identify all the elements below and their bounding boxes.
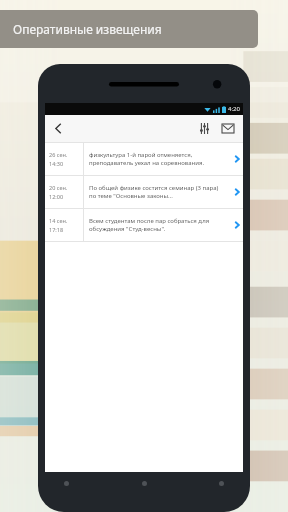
- button[interactable]: Filter: [191, 115, 217, 142]
- button[interactable]: Nav button: [142, 481, 147, 486]
- button[interactable]: 20 сен.: [45, 176, 243, 208]
- button[interactable]: Nav button: [219, 481, 224, 486]
- staticText: 4:20: [228, 105, 240, 113]
- other: Open: [230, 143, 243, 175]
- button[interactable]: Messages: [217, 115, 239, 142]
- button[interactable]: 26 сен.: [45, 143, 243, 175]
- staticText: 14:30: [49, 160, 64, 167]
- staticText: Всем студентам после пар собраться для о…: [89, 217, 227, 233]
- staticText: 17:18: [49, 226, 64, 233]
- staticText: 20 сен.: [49, 184, 68, 191]
- button[interactable]: Back: [45, 115, 71, 142]
- staticText: Оперативные извещения: [13, 21, 162, 37]
- staticText: 26 сен.: [49, 151, 68, 158]
- other: Open: [230, 176, 243, 208]
- staticText: физкультура 1-й парой отменяется, препод…: [89, 151, 227, 167]
- button[interactable]: 14 сен.: [45, 209, 243, 241]
- staticText: По общей физике состится семинар (3 пара…: [89, 184, 227, 200]
- other: Open: [230, 209, 243, 241]
- button[interactable]: Nav button: [64, 481, 69, 486]
- button[interactable]: Оперативные извещения: [0, 10, 258, 48]
- staticText: 14 сен.: [49, 217, 68, 224]
- staticText: 12:00: [49, 193, 64, 200]
